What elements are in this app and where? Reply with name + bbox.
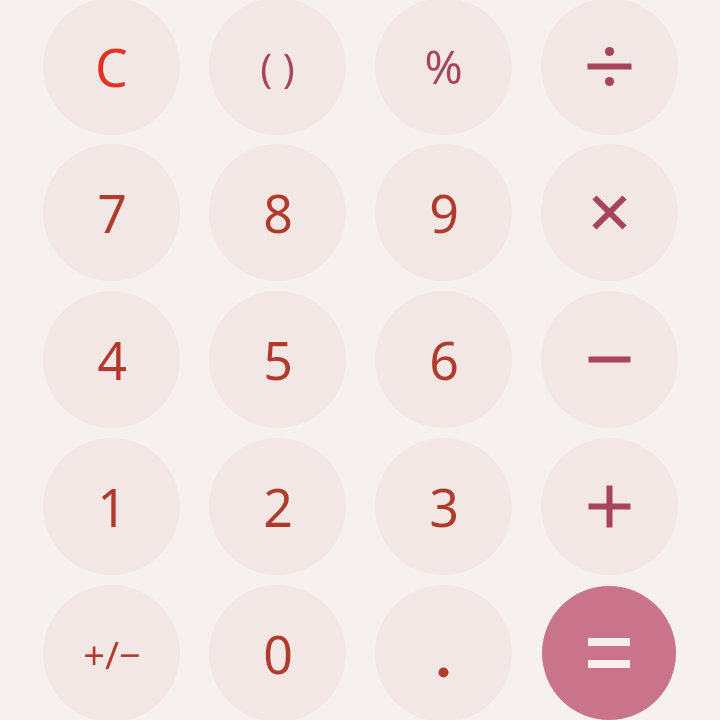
- button[interactable]: Equals: [542, 586, 676, 720]
- staticText: 7: [97, 177, 127, 248]
- button[interactable]: Divide: [541, 0, 678, 135]
- staticText: 3: [429, 471, 459, 542]
- staticText: ( ): [260, 40, 295, 94]
- button[interactable]: Multiply: [541, 144, 678, 281]
- button[interactable]: 7: [43, 144, 180, 281]
- staticText: %: [424, 35, 463, 98]
- staticText: 2: [263, 471, 293, 542]
- staticText: 5: [263, 324, 293, 395]
- staticText: 9: [429, 177, 459, 248]
- staticText: 1: [97, 471, 127, 542]
- staticText: 8: [263, 177, 293, 248]
- button[interactable]: 4: [43, 291, 180, 428]
- button[interactable]: 9: [375, 144, 512, 281]
- button[interactable]: 6: [375, 291, 512, 428]
- button[interactable]: 8: [209, 144, 346, 281]
- button[interactable]: 0: [209, 585, 346, 720]
- staticText: +/−: [83, 628, 141, 680]
- button[interactable]: Percent: [375, 0, 512, 135]
- button[interactable]: 2: [209, 438, 346, 575]
- button[interactable]: Plus minus sign: [43, 585, 180, 720]
- button[interactable]: 1: [43, 438, 180, 575]
- button[interactable]: Clear: [43, 0, 180, 135]
- staticText: 6: [429, 324, 459, 395]
- staticText: 4: [97, 324, 127, 395]
- button[interactable]: 3: [375, 438, 512, 575]
- button[interactable]: Decimal point: [375, 585, 512, 720]
- button[interactable]: Minus: [541, 291, 678, 428]
- staticText: C: [95, 31, 128, 102]
- button[interactable]: Parentheses: [209, 0, 346, 135]
- staticText: 0: [263, 618, 293, 689]
- button[interactable]: Plus: [541, 438, 678, 575]
- button[interactable]: 5: [209, 291, 346, 428]
